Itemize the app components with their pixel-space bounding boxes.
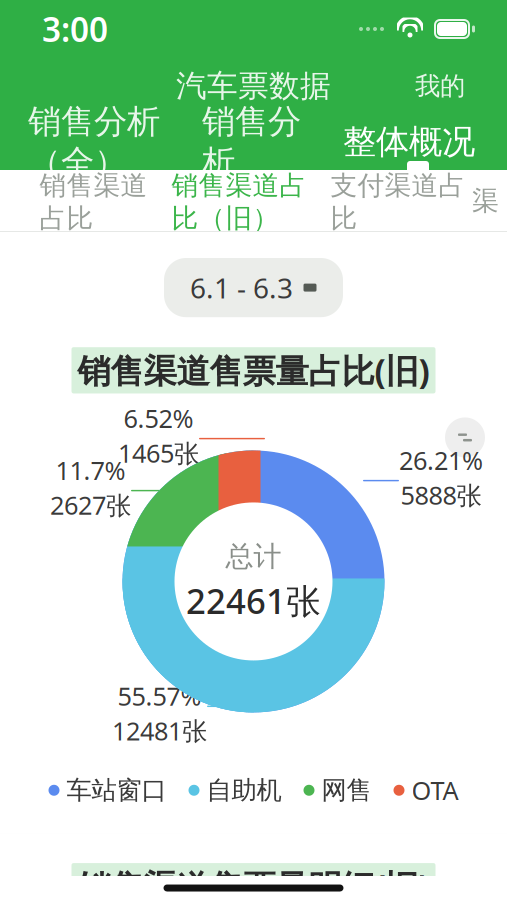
staticText: 6.1 - 6.3 [190, 269, 293, 306]
staticText: 整体概况 [343, 121, 475, 162]
staticText: OTA [411, 773, 458, 807]
staticText: 销售渠道售票量明细(旧) [77, 864, 429, 900]
button[interactable]: 我的 [401, 62, 479, 109]
staticText: 22461张 [186, 578, 321, 624]
staticText: 12481张 [112, 714, 207, 747]
staticText: 汽车票数据 [176, 67, 331, 105]
button[interactable]: 销售分析 [192, 95, 311, 189]
staticText: 销售渠道售票量占比(旧) [77, 348, 429, 392]
staticText: 我的 [415, 70, 465, 101]
staticText: 总计 [225, 539, 281, 574]
staticText: 销售渠道占比 [39, 169, 147, 235]
staticText: 自助机 [206, 775, 281, 806]
staticText: 5888张 [400, 478, 481, 512]
staticText: 2627张 [50, 488, 131, 522]
staticText: 11.7% [55, 453, 125, 487]
button[interactable]: 6.1 - 6.3 [164, 258, 343, 317]
button[interactable]: Expand chart fullscreen [445, 417, 485, 457]
staticText: 支付渠道占比 [330, 169, 465, 235]
staticText: 55.57% [117, 679, 201, 713]
staticText: 销售渠道占比（旧） [171, 169, 306, 235]
staticText: 6.52% [123, 401, 193, 435]
button[interactable]: 整体概况 [333, 115, 485, 168]
staticText: 销售分析 [202, 101, 301, 183]
staticText: 车站窗口 [66, 775, 166, 806]
button[interactable]: 销售渠道占比（旧） [159, 159, 318, 243]
staticText: 3:00 [42, 7, 108, 51]
button[interactable]: 销售渠道占比 [27, 159, 159, 243]
button[interactable]: 销售分析（全） [18, 95, 170, 189]
staticText: 销售分析（全） [28, 101, 160, 183]
button[interactable]: 支付渠道占比 [318, 159, 477, 243]
staticText: 1465张 [118, 436, 199, 470]
staticText: 26.21% [399, 443, 483, 477]
staticText: 网售 [321, 775, 371, 806]
staticText: 渠 [472, 185, 499, 217]
